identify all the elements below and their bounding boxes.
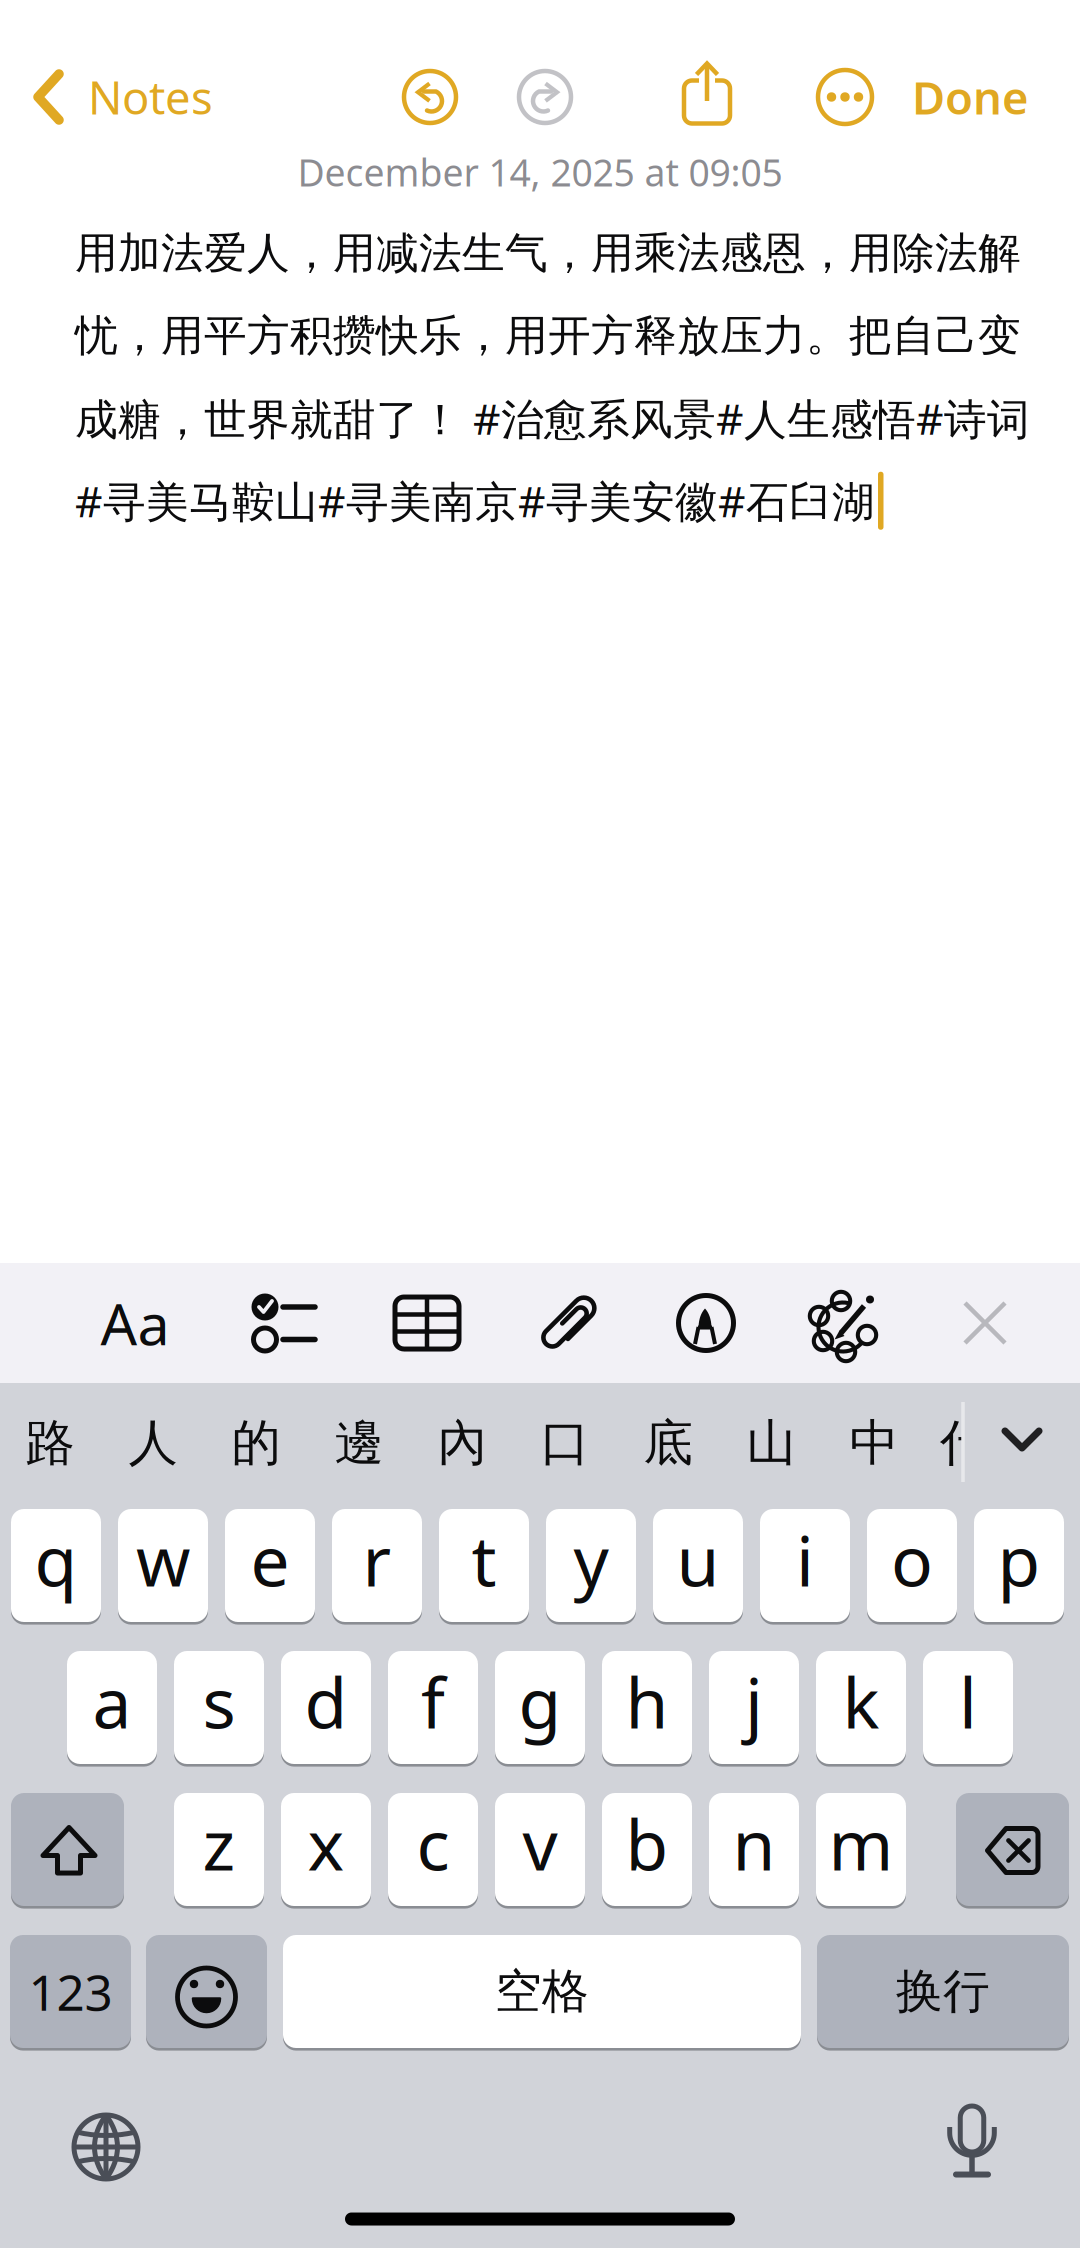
staticText: u bbox=[676, 1513, 719, 1606]
staticText: 忧，用平方积攒快乐，用开方释放压力。把自己变 bbox=[75, 309, 1021, 362]
staticText: v bbox=[522, 1797, 557, 1890]
button[interactable]: r bbox=[332, 1509, 422, 1622]
staticText: 內 bbox=[437, 1413, 486, 1473]
staticText: l bbox=[959, 1655, 977, 1748]
button[interactable]: d bbox=[281, 1651, 371, 1764]
staticText: 123 bbox=[28, 1959, 112, 2024]
button[interactable]: p bbox=[974, 1509, 1064, 1622]
staticText: a bbox=[92, 1655, 131, 1748]
staticText: Notes bbox=[88, 67, 213, 127]
button[interactable]: e bbox=[225, 1509, 315, 1622]
button[interactable]: 口 bbox=[518, 1387, 612, 1499]
staticText: December 14, 2025 at 09:05 bbox=[297, 147, 782, 197]
button[interactable]: 底 bbox=[621, 1387, 715, 1499]
staticText: 空格 bbox=[495, 1963, 589, 2020]
staticText: Aa bbox=[100, 1285, 169, 1361]
staticText: n bbox=[732, 1797, 775, 1890]
button[interactable]: k bbox=[816, 1651, 906, 1764]
button[interactable]: n bbox=[709, 1793, 799, 1906]
button[interactable]: q bbox=[11, 1509, 101, 1622]
button[interactable]: More bbox=[810, 62, 880, 132]
button[interactable]: a bbox=[67, 1651, 157, 1764]
staticText: 底 bbox=[643, 1413, 692, 1473]
button[interactable]: x bbox=[281, 1793, 371, 1906]
button[interactable]: Expand candidates bbox=[987, 1421, 1057, 1461]
button[interactable]: 中 bbox=[827, 1387, 921, 1499]
button[interactable]: Share bbox=[669, 50, 745, 140]
staticText: 的 bbox=[231, 1413, 280, 1473]
button[interactable]: c bbox=[388, 1793, 478, 1906]
staticText: j bbox=[745, 1655, 763, 1748]
button[interactable]: Done bbox=[829, 47, 1029, 147]
button[interactable]: y bbox=[546, 1509, 636, 1622]
staticText: #寻美马鞍山#寻美南京#寻美安徽#石臼湖 bbox=[75, 472, 875, 529]
button[interactable]: Dictate bbox=[919, 2091, 1025, 2197]
staticText: y bbox=[573, 1513, 608, 1606]
button[interactable]: v bbox=[495, 1793, 585, 1906]
staticText: t bbox=[471, 1513, 496, 1606]
staticText: o bbox=[891, 1513, 933, 1606]
button[interactable]: l bbox=[923, 1651, 1013, 1764]
staticText: 什 bbox=[940, 1413, 989, 1473]
button[interactable]: 路 bbox=[3, 1387, 97, 1499]
button[interactable]: Undo bbox=[395, 62, 465, 132]
button[interactable]: Redo bbox=[510, 62, 580, 132]
button[interactable]: 123 bbox=[10, 1935, 131, 2048]
staticText: q bbox=[34, 1513, 77, 1606]
staticText: 中 bbox=[849, 1413, 898, 1473]
button[interactable]: Back to Notes bbox=[0, 0, 280, 140]
button[interactable]: z bbox=[174, 1793, 264, 1906]
staticText: d bbox=[304, 1655, 347, 1748]
staticText: z bbox=[202, 1797, 235, 1890]
button[interactable]: 邊 bbox=[312, 1387, 406, 1499]
staticText: f bbox=[421, 1655, 445, 1748]
button[interactable]: g bbox=[495, 1651, 585, 1764]
button[interactable]: 山 bbox=[724, 1387, 818, 1499]
button[interactable]: 换行 bbox=[817, 1935, 1069, 2048]
button[interactable]: 的 bbox=[209, 1387, 303, 1499]
staticText: i bbox=[796, 1513, 814, 1606]
button[interactable]: b bbox=[602, 1793, 692, 1906]
staticText: 人 bbox=[128, 1413, 177, 1473]
button[interactable]: t bbox=[439, 1509, 529, 1622]
button[interactable]: o bbox=[867, 1509, 957, 1622]
staticText: 邊 bbox=[334, 1413, 383, 1473]
staticText: 成糖，世界就甜了！ #治愈系风景#人生感悟#诗词 bbox=[75, 390, 1030, 447]
button[interactable]: Attach bbox=[514, 1268, 624, 1378]
button[interactable]: 空格 bbox=[283, 1935, 801, 2048]
button[interactable]: j bbox=[709, 1651, 799, 1764]
button[interactable]: w bbox=[118, 1509, 208, 1622]
button[interactable]: Next keyboard bbox=[53, 2094, 159, 2200]
staticText: g bbox=[518, 1655, 561, 1748]
staticText: k bbox=[842, 1655, 879, 1748]
button[interactable]: s bbox=[174, 1651, 264, 1764]
staticText: m bbox=[828, 1797, 893, 1890]
button[interactable]: m bbox=[816, 1793, 906, 1906]
button[interactable]: Markup bbox=[651, 1268, 761, 1378]
staticText: b bbox=[625, 1797, 668, 1890]
button[interactable]: Dismiss keyboard bbox=[930, 1268, 1040, 1378]
button[interactable]: Emoji bbox=[146, 1935, 267, 2048]
button[interactable]: 內 bbox=[415, 1387, 509, 1499]
button[interactable]: 人 bbox=[106, 1387, 200, 1499]
button[interactable]: f bbox=[388, 1651, 478, 1764]
button[interactable]: Format bbox=[80, 1268, 190, 1378]
staticText: 山 bbox=[746, 1413, 795, 1473]
button[interactable]: Writing Tools bbox=[786, 1268, 896, 1378]
staticText: p bbox=[997, 1513, 1040, 1606]
staticText: 换行 bbox=[896, 1963, 990, 2020]
staticText: Done bbox=[912, 67, 1029, 127]
staticText: s bbox=[202, 1655, 235, 1748]
staticText: 口 bbox=[540, 1413, 589, 1473]
button[interactable]: u bbox=[653, 1509, 743, 1622]
button[interactable]: Checklist bbox=[230, 1268, 340, 1378]
button[interactable]: Shift bbox=[11, 1793, 124, 1906]
staticText: x bbox=[307, 1797, 344, 1890]
button[interactable]: Table bbox=[372, 1268, 482, 1378]
button[interactable]: i bbox=[760, 1509, 850, 1622]
button[interactable]: Delete bbox=[956, 1793, 1069, 1906]
button[interactable]: h bbox=[602, 1651, 692, 1764]
staticText: 路 bbox=[25, 1413, 74, 1473]
staticText: c bbox=[416, 1797, 449, 1890]
staticText: e bbox=[250, 1513, 289, 1606]
